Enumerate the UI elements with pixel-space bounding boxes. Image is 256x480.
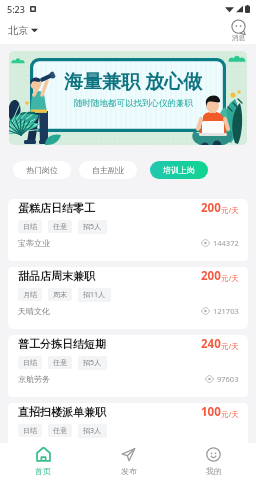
staticText: 121703 xyxy=(213,306,239,316)
button[interactable]: 普工分拣日结短期 xyxy=(8,335,248,397)
button[interactable]: 发布 xyxy=(86,443,171,480)
staticText: 海量兼职 放心做 xyxy=(64,68,202,94)
staticText: 首页 xyxy=(35,466,51,476)
staticText: 天晴文化 xyxy=(18,306,201,316)
staticText: 200 xyxy=(201,268,221,284)
staticText: 招5人 xyxy=(83,222,102,232)
button[interactable]: 直招扫楼派单兼职 xyxy=(8,403,248,465)
staticText: 元/天 xyxy=(221,273,239,283)
staticText: 日结 xyxy=(23,426,37,435)
staticText: 200 xyxy=(201,200,221,216)
staticText: 宏图传媒 xyxy=(18,442,205,452)
staticText: 5:23 xyxy=(7,3,25,15)
staticText: 任意 xyxy=(53,358,67,367)
staticText: 任意 xyxy=(53,426,67,435)
staticText: 144372 xyxy=(213,238,239,248)
staticText: 元/天 xyxy=(221,409,239,419)
staticText: 消息 xyxy=(232,34,245,42)
button[interactable]: 我的 xyxy=(171,443,256,480)
staticText: 招3人 xyxy=(83,426,102,436)
button[interactable]: 北京 xyxy=(8,24,38,37)
staticText: 月结 xyxy=(23,290,37,299)
staticText: 招11人 xyxy=(83,290,106,300)
staticText: 100 xyxy=(201,404,221,420)
staticText: 北京 xyxy=(8,24,28,37)
staticText: 发布 xyxy=(121,466,137,476)
staticText: 招5人 xyxy=(83,358,102,368)
button[interactable]: 甜品店周末兼职 xyxy=(8,267,248,329)
staticText: 宝蒂立业 xyxy=(18,238,201,248)
staticText: 元/天 xyxy=(221,205,239,215)
staticText: 京航劳务 xyxy=(18,374,205,384)
staticText: 蛋糕店日结零工 xyxy=(18,201,201,215)
staticText: 我的 xyxy=(206,466,222,476)
button[interactable]: 首页 xyxy=(0,443,86,480)
staticText: 日结 xyxy=(23,358,37,367)
staticText: 240 xyxy=(201,336,221,352)
staticText: 周末 xyxy=(53,290,67,299)
staticText: 甜品店周末兼职 xyxy=(18,269,201,283)
button[interactable]: 蛋糕店日结零工 xyxy=(8,199,248,261)
staticText: 元/天 xyxy=(221,341,239,351)
staticText: 任意 xyxy=(53,222,67,231)
staticText: 直招扫楼派单兼职 xyxy=(18,405,201,419)
staticText: 热门岗位 xyxy=(26,165,58,175)
staticText: 自主副业 xyxy=(92,165,124,175)
button[interactable]: 热门岗位 xyxy=(13,161,71,179)
button[interactable]: 消息 xyxy=(231,19,246,42)
staticText: 日结 xyxy=(23,222,37,231)
staticText: 普工分拣日结短期 xyxy=(18,337,201,351)
button[interactable]: 培训上岗 xyxy=(150,161,208,179)
staticText: 97603 xyxy=(217,374,239,384)
staticText: 培训上岗 xyxy=(163,165,195,175)
button[interactable]: 自主副业 xyxy=(79,161,137,179)
staticText: 88211 xyxy=(217,442,239,452)
staticText: 随时随地都可以找到心仪的兼职 xyxy=(74,98,193,109)
